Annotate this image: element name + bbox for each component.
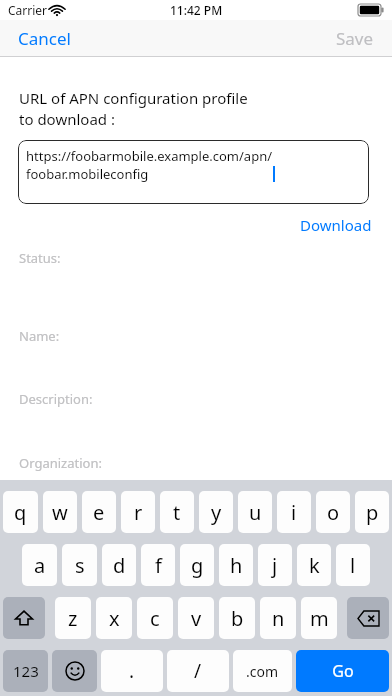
staticText: p — [366, 499, 379, 526]
staticText: d — [113, 552, 126, 579]
button[interactable]: / — [167, 650, 229, 692]
button[interactable]: l — [336, 544, 370, 586]
button[interactable]: i — [277, 491, 311, 533]
staticText: Status: — [19, 249, 61, 267]
staticText: h — [230, 552, 243, 579]
staticText: y — [211, 499, 222, 526]
staticText: z — [68, 605, 78, 632]
staticText: Description: — [19, 390, 93, 408]
staticText: URL of APN configuration profile to down… — [19, 88, 248, 130]
button[interactable]: n — [260, 597, 296, 639]
staticText: f — [155, 552, 162, 579]
button[interactable]: s — [62, 544, 97, 586]
staticText: r — [134, 499, 143, 526]
staticText: a — [34, 552, 46, 579]
button[interactable]: Backspace — [347, 597, 389, 639]
button[interactable]: j — [258, 544, 292, 586]
button[interactable]: t — [160, 491, 194, 533]
button[interactable]: p — [355, 491, 389, 533]
button[interactable]: 123 — [3, 650, 48, 692]
staticText: Cancel — [18, 27, 71, 50]
button[interactable]: f — [141, 544, 175, 586]
staticText: Name: — [19, 327, 60, 345]
button[interactable]: c — [137, 597, 173, 639]
button[interactable]: Save — [318, 21, 392, 56]
staticText: 11:42 PM — [170, 2, 223, 18]
button[interactable]: q — [3, 491, 38, 533]
button[interactable]: b — [219, 597, 255, 639]
staticText: c — [150, 605, 160, 632]
button[interactable]: o — [316, 491, 350, 533]
button[interactable]: r — [121, 491, 155, 533]
staticText: v — [191, 605, 202, 632]
button[interactable]: Cancel — [0, 21, 89, 56]
staticText: Go — [332, 660, 354, 682]
button[interactable]: k — [297, 544, 331, 586]
staticText: m — [310, 605, 329, 632]
button[interactable]: https://foobarmobile.example.com/apn/ fo… — [18, 140, 369, 204]
staticText: s — [75, 552, 85, 579]
staticText: q — [14, 499, 27, 526]
staticText: e — [93, 499, 105, 526]
button[interactable]: . — [101, 650, 163, 692]
staticText: Save — [336, 27, 374, 50]
button[interactable]: h — [219, 544, 253, 586]
button[interactable]: x — [96, 597, 132, 639]
staticText: Download — [300, 215, 372, 235]
staticText: l — [350, 552, 356, 579]
staticText: w — [52, 499, 68, 526]
staticText: . — [129, 658, 135, 684]
button[interactable]: w — [43, 491, 77, 533]
staticText: i — [291, 499, 297, 526]
button[interactable]: Download — [288, 213, 392, 237]
staticText: https://foobarmobile.example.com/apn/ fo… — [26, 147, 273, 183]
staticText: u — [249, 499, 262, 526]
button[interactable]: z — [55, 597, 91, 639]
staticText: Carrier — [8, 2, 48, 18]
staticText: o — [327, 499, 340, 526]
button[interactable]: Go — [296, 650, 389, 692]
staticText: b — [231, 605, 244, 632]
button[interactable]: a — [22, 544, 57, 586]
button[interactable]: g — [180, 544, 214, 586]
staticText: x — [109, 605, 120, 632]
button[interactable]: u — [238, 491, 272, 533]
button[interactable]: v — [178, 597, 214, 639]
staticText: j — [272, 552, 278, 579]
staticText: Organization: — [19, 454, 102, 472]
staticText: g — [191, 552, 204, 579]
staticText: 123 — [13, 661, 39, 681]
button[interactable]: .com — [233, 650, 292, 692]
button[interactable]: m — [301, 597, 337, 639]
staticText: k — [309, 552, 320, 579]
staticText: / — [194, 658, 202, 684]
button[interactable]: d — [102, 544, 136, 586]
staticText: n — [272, 605, 285, 632]
button[interactable]: Shift — [3, 597, 45, 639]
button[interactable]: e — [82, 491, 116, 533]
button[interactable]: y — [199, 491, 233, 533]
button[interactable]: Emoji — [52, 650, 97, 692]
staticText: .com — [246, 662, 279, 681]
staticText: t — [173, 499, 181, 526]
